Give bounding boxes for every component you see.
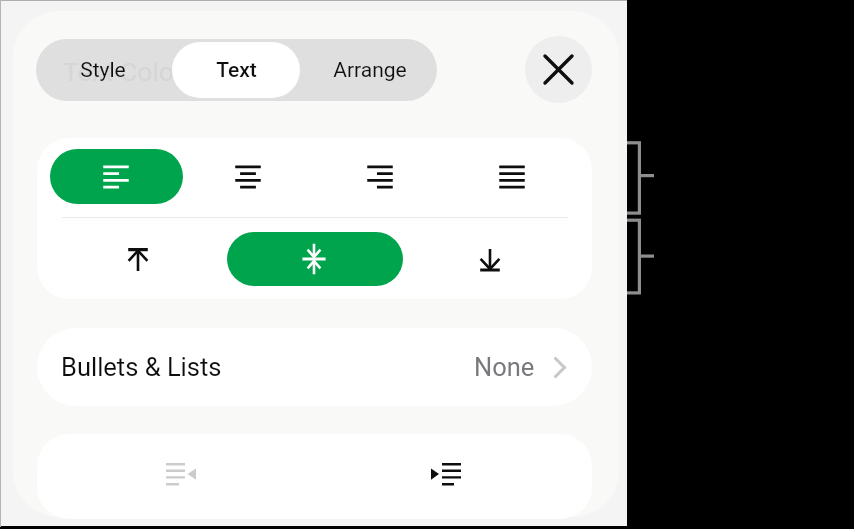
button[interactable]: Align [315,149,447,204]
button[interactable]: Increase indent [314,434,579,519]
button[interactable]: Decrease indent [50,434,314,519]
button[interactable]: Align [183,149,315,204]
button[interactable]: Style [39,42,166,98]
staticText: Text [216,58,257,83]
staticText: Bullets & Lists [61,352,222,382]
button[interactable]: Arrange [306,42,434,98]
button[interactable]: Close [525,36,592,103]
staticText: Style [80,58,126,83]
button[interactable]: Vertical align [50,232,227,286]
button[interactable]: Align [447,149,579,204]
button[interactable]: Text [172,42,300,98]
button[interactable]: Bullets & Lists [37,328,592,406]
button[interactable]: Vertical align [227,232,403,286]
staticText: Text Color [63,56,183,87]
button[interactable]: Vertical align [403,232,579,286]
button[interactable]: Align [50,149,183,204]
staticText: Arrange [333,58,407,83]
staticText: None [474,352,535,382]
